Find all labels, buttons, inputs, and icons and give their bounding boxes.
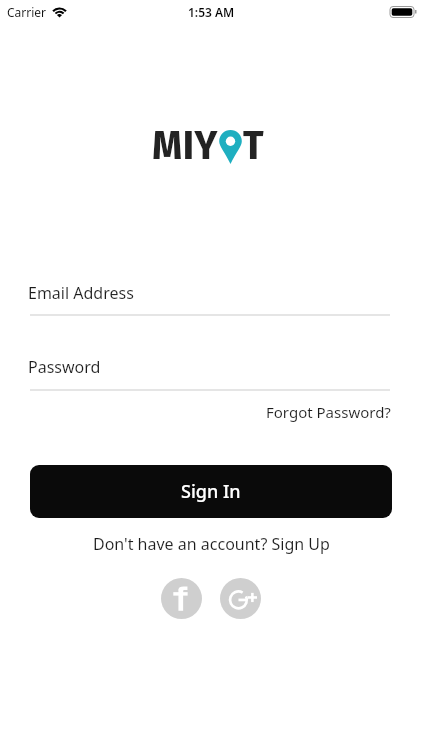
button[interactable]: Don't have an account? Sign Up xyxy=(93,533,330,555)
staticText: Email Address xyxy=(28,282,134,304)
button[interactable]: Forgot Password? xyxy=(266,402,391,422)
staticText: T xyxy=(243,121,265,159)
staticText: Sign In xyxy=(181,479,241,504)
staticText: MIY xyxy=(152,121,218,159)
staticText: Password xyxy=(28,356,101,378)
staticText: Carrier xyxy=(7,4,47,20)
button[interactable]: Sign In xyxy=(30,465,392,518)
button[interactable] xyxy=(220,578,261,619)
button[interactable] xyxy=(161,578,202,619)
staticText: 1:53 AM xyxy=(188,4,235,20)
